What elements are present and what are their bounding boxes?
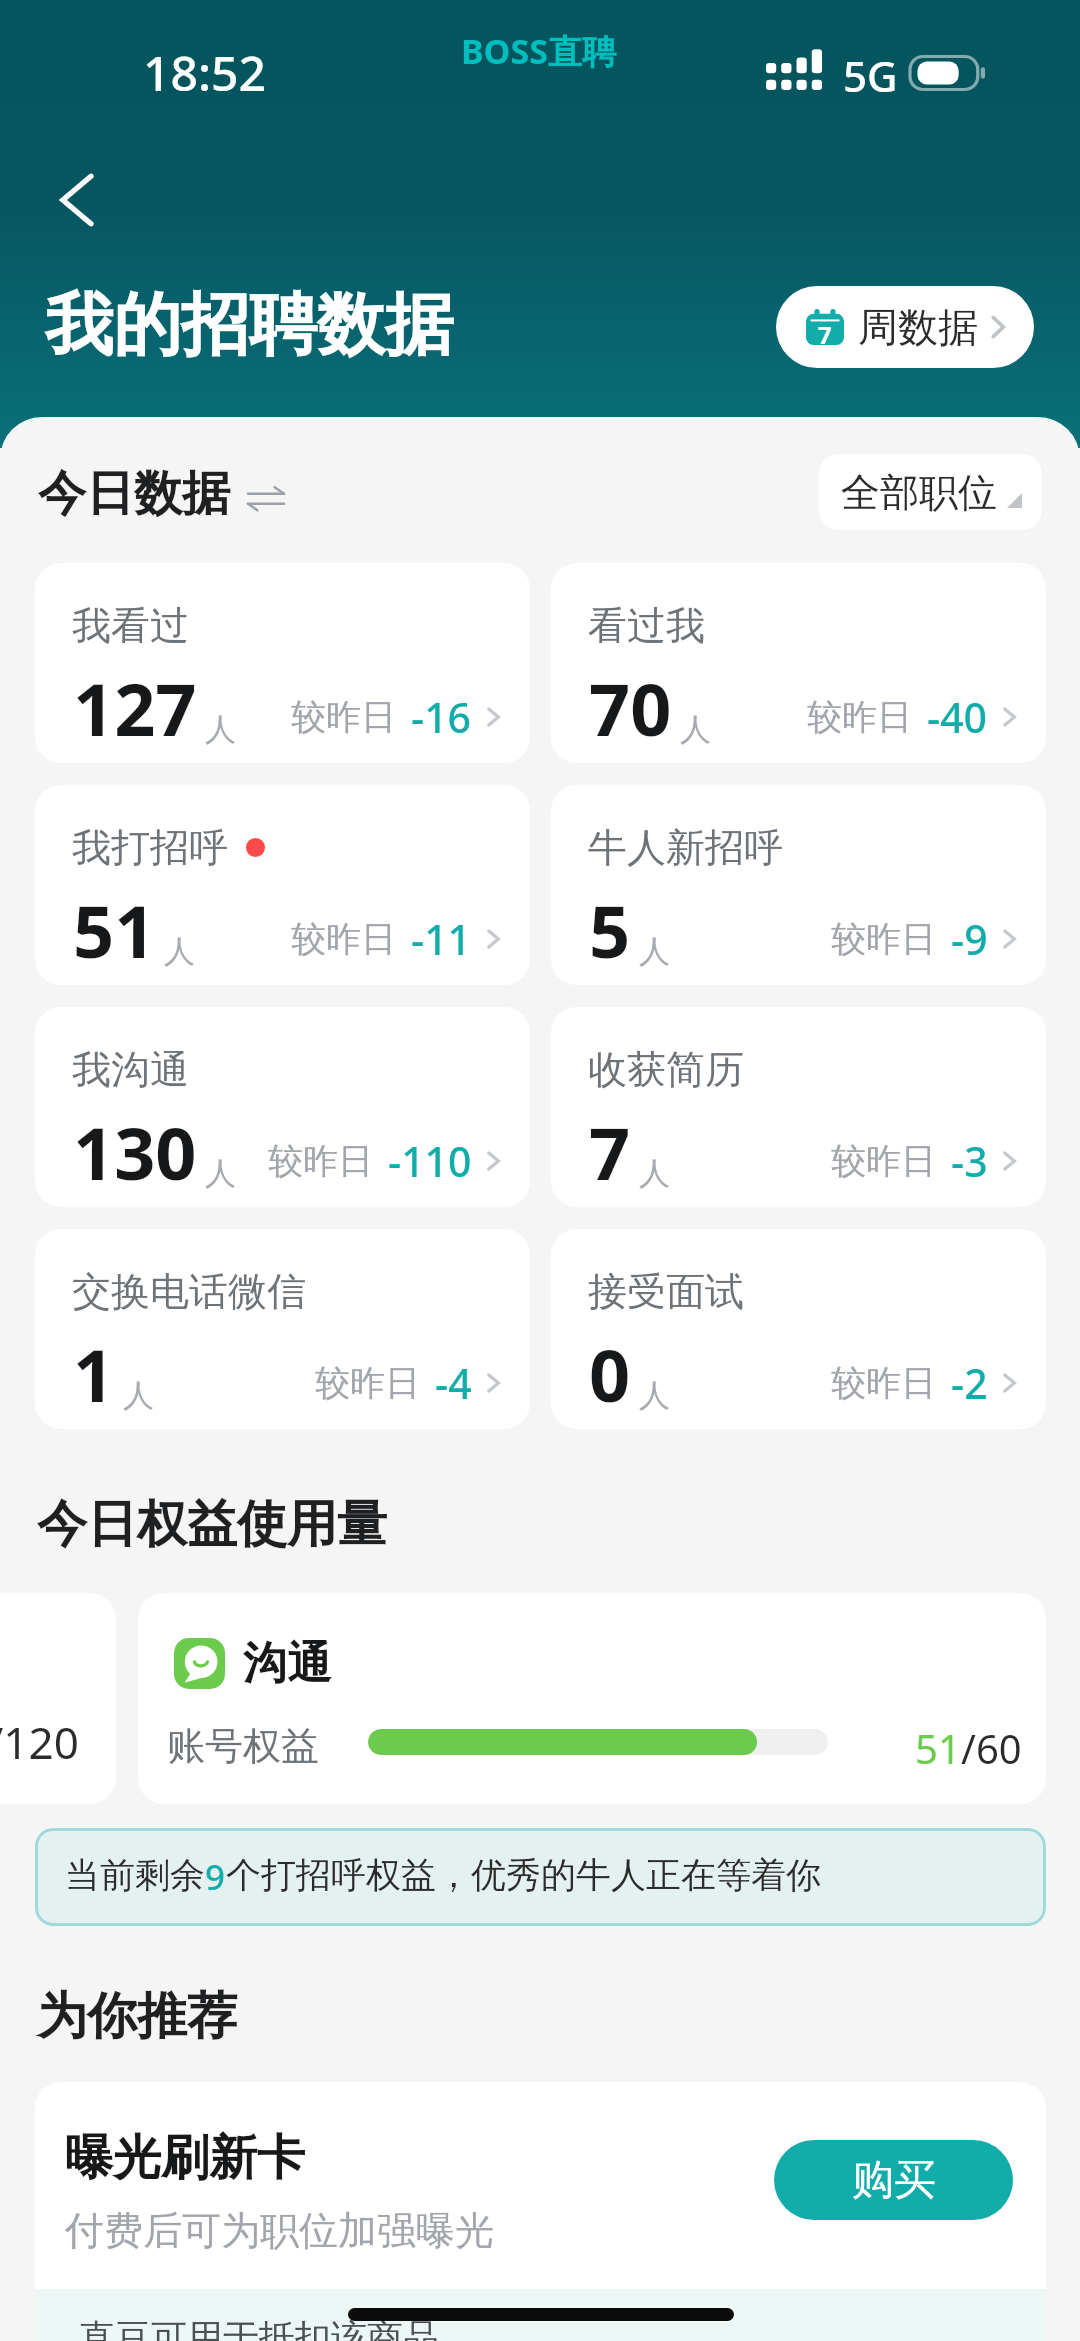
staticText: 0: [589, 1325, 631, 1423]
staticText: 收获简历: [588, 1045, 744, 1094]
staticText: 较昨日: [268, 1139, 373, 1183]
staticText: 较昨日: [831, 917, 936, 961]
button[interactable]: 购买: [774, 2140, 1013, 2220]
staticText: BOSS直聘: [461, 28, 616, 74]
staticText: 个打招呼权益，优秀的牛人正在等着你: [226, 1853, 821, 1897]
staticText: 较昨日: [291, 695, 396, 739]
button[interactable]: 7: [776, 286, 1034, 368]
staticText: 人: [205, 710, 236, 749]
button[interactable]: 我打招呼: [35, 785, 530, 985]
staticText: 人: [205, 1154, 236, 1193]
staticText: 人: [164, 932, 195, 971]
button[interactable]: Back: [30, 152, 126, 248]
staticText: 7: [818, 318, 832, 351]
staticText: 51: [73, 881, 156, 979]
staticText: 全部职位: [841, 468, 997, 517]
button[interactable]: 看过我: [551, 563, 1046, 763]
staticText: -2: [951, 1355, 988, 1411]
staticText: -16: [411, 689, 472, 745]
staticText: /120: [0, 1712, 79, 1772]
staticText: 较昨日: [291, 917, 396, 961]
button[interactable]: 我看过: [35, 563, 530, 763]
staticText: 70: [589, 659, 672, 757]
staticText: 130: [73, 1103, 197, 1201]
staticText: 7: [589, 1103, 631, 1201]
staticText: 直豆可用于抵扣该商品: [79, 2315, 439, 2341]
staticText: 曝光刷新卡: [65, 2128, 305, 2188]
staticText: 付费后可为职位加强曝光: [65, 2206, 494, 2255]
staticText: 较昨日: [831, 1139, 936, 1183]
button[interactable]: 沟通: [138, 1593, 1046, 1804]
staticText: 51: [915, 1721, 961, 1775]
staticText: 人: [639, 1154, 670, 1193]
staticText: 较昨日: [807, 695, 912, 739]
staticText: 18:52: [143, 40, 266, 105]
staticText: 接受面试: [588, 1267, 744, 1316]
button[interactable]: 我沟通: [35, 1007, 530, 1207]
staticText: 牛人新招呼: [588, 823, 783, 872]
staticText: -110: [388, 1133, 472, 1189]
button[interactable]: 全部职位: [819, 454, 1042, 530]
staticText: 人: [639, 1376, 670, 1415]
button[interactable]: 交换电话微信: [35, 1229, 530, 1429]
button[interactable]: 接受面试: [551, 1229, 1046, 1429]
button[interactable]: 收获简历: [551, 1007, 1046, 1207]
staticText: 9: [205, 1853, 226, 1901]
staticText: 人: [639, 932, 670, 971]
staticText: 为你推荐: [37, 1985, 237, 2048]
staticText: 较昨日: [315, 1361, 420, 1405]
staticText: 人: [123, 1376, 154, 1415]
staticText: 1: [73, 1325, 115, 1423]
button[interactable]: 牛人新招呼: [551, 785, 1046, 985]
staticText: -9: [951, 911, 988, 967]
staticText: 5G: [843, 47, 898, 104]
staticText: 今日数据: [38, 464, 230, 524]
staticText: 我打招呼: [72, 823, 228, 872]
staticText: 5: [589, 881, 631, 979]
staticText: 127: [73, 659, 197, 757]
staticText: 交换电话微信: [72, 1267, 306, 1316]
staticText: 我的招聘数据: [45, 283, 453, 369]
staticText: 当前剩余: [65, 1853, 205, 1897]
staticText: 周数据: [858, 302, 978, 352]
staticText: /60: [961, 1721, 1022, 1775]
staticText: 人: [680, 710, 711, 749]
staticText: 看过我: [588, 601, 705, 650]
staticText: -11: [411, 911, 472, 967]
staticText: -3: [951, 1133, 988, 1189]
staticText: -40: [927, 689, 988, 745]
button[interactable]: 当前剩余: [35, 1828, 1046, 1926]
staticText: 账号权益: [167, 1722, 319, 1770]
staticText: 我沟通: [72, 1045, 189, 1094]
staticText: 今日权益使用量: [37, 1493, 387, 1556]
staticText: 我看过: [72, 601, 189, 650]
staticText: 较昨日: [831, 1361, 936, 1405]
staticText: -4: [435, 1355, 472, 1411]
staticText: 购买: [852, 2154, 936, 2207]
staticText: 沟通: [243, 1636, 331, 1691]
